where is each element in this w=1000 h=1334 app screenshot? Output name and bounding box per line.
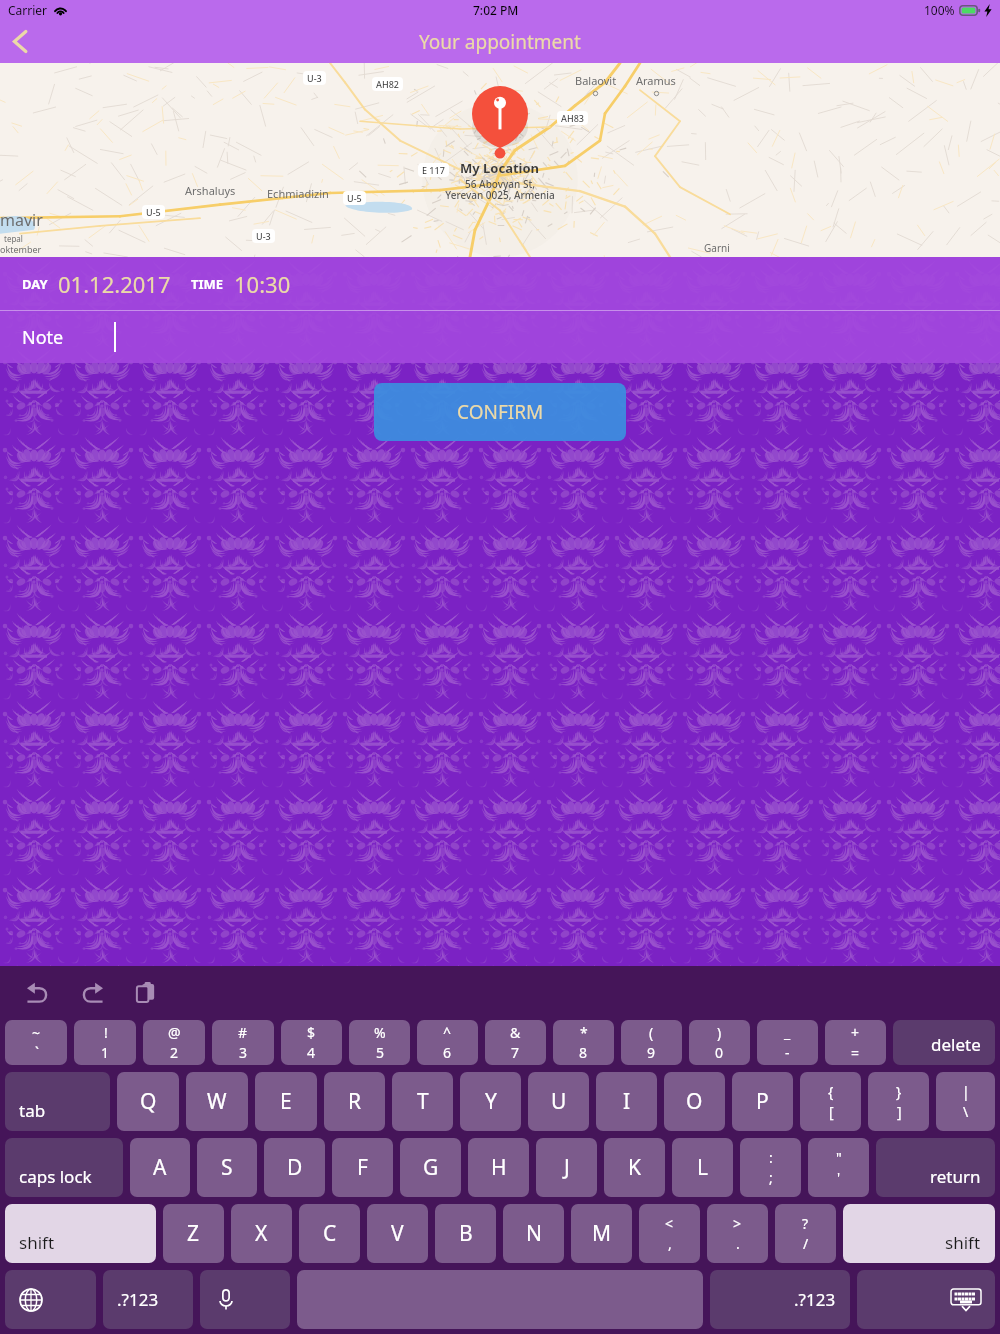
button[interactable]: DAY xyxy=(0,257,1000,310)
button[interactable]: .?123 xyxy=(103,1270,193,1329)
staticText: 100% xyxy=(924,2,955,18)
button[interactable]: J xyxy=(536,1138,597,1197)
button[interactable]: | xyxy=(936,1072,995,1131)
staticText: % xyxy=(374,1023,386,1042)
button[interactable]: Z xyxy=(163,1204,224,1263)
button[interactable]: Back xyxy=(0,20,40,63)
button[interactable]: Map, My Location, 56 Abovyan St, Yerevan… xyxy=(0,63,1000,257)
button[interactable]: shift xyxy=(843,1204,995,1263)
button[interactable]: A xyxy=(130,1138,190,1197)
button[interactable]: V xyxy=(367,1204,428,1263)
button[interactable]: T xyxy=(392,1072,453,1131)
staticText: < xyxy=(665,1214,674,1233)
button[interactable]: $ xyxy=(281,1020,342,1065)
button[interactable]: # xyxy=(212,1020,274,1065)
staticText: " xyxy=(836,1148,842,1167)
staticText: shift xyxy=(945,1231,981,1254)
button[interactable]: Y xyxy=(460,1072,521,1131)
staticText: ` xyxy=(35,1043,39,1062)
staticText: / xyxy=(803,1234,809,1253)
button[interactable]: I xyxy=(596,1072,657,1131)
button[interactable]: Hide keyboard xyxy=(857,1270,995,1329)
staticText: 3 xyxy=(239,1043,248,1062)
staticText: Balaovit xyxy=(575,73,617,88)
button[interactable]: .?123 xyxy=(710,1270,850,1329)
staticText: DAY xyxy=(22,275,48,293)
button[interactable]: { xyxy=(800,1072,861,1131)
button[interactable]: N xyxy=(503,1204,564,1263)
button[interactable]: O xyxy=(664,1072,725,1131)
button[interactable]: L xyxy=(672,1138,733,1197)
button[interactable]: } xyxy=(868,1072,929,1131)
button[interactable]: C xyxy=(299,1204,360,1263)
staticText: Aramus xyxy=(636,73,676,88)
button[interactable]: F xyxy=(332,1138,393,1197)
button[interactable]: E xyxy=(255,1072,317,1131)
button[interactable]: U xyxy=(528,1072,589,1131)
button[interactable]: W xyxy=(186,1072,248,1131)
button[interactable]: caps lock xyxy=(5,1138,123,1197)
staticText: tab xyxy=(19,1099,46,1122)
button[interactable]: G xyxy=(400,1138,461,1197)
staticText: U xyxy=(551,1087,567,1116)
staticText: J xyxy=(564,1153,570,1182)
staticText: U-5 xyxy=(347,192,362,204)
button[interactable]: ^ xyxy=(417,1020,478,1065)
button[interactable]: + xyxy=(825,1020,886,1065)
button[interactable]: % xyxy=(349,1020,410,1065)
button[interactable]: delete xyxy=(893,1020,995,1065)
button[interactable]: ~ xyxy=(5,1020,67,1065)
button[interactable]: Paste xyxy=(124,971,168,1015)
button[interactable]: < xyxy=(639,1204,700,1263)
button[interactable]: : xyxy=(740,1138,801,1197)
button[interactable]: CONFIRM xyxy=(374,383,626,441)
button[interactable]: > xyxy=(707,1204,768,1263)
button[interactable]: ( xyxy=(621,1020,682,1065)
button[interactable]: K xyxy=(604,1138,665,1197)
button[interactable]: shift xyxy=(5,1204,156,1263)
button[interactable]: D xyxy=(264,1138,325,1197)
button[interactable]: ? xyxy=(775,1204,836,1263)
staticText: TIME xyxy=(191,275,224,293)
button[interactable]: S xyxy=(197,1138,257,1197)
button[interactable]: @ xyxy=(143,1020,205,1065)
button[interactable]: M xyxy=(571,1204,632,1263)
staticText: Your appointment xyxy=(419,29,581,55)
staticText: E xyxy=(280,1087,292,1116)
staticText: U-5 xyxy=(146,206,161,218)
button[interactable]: Q xyxy=(117,1072,179,1131)
staticText: { xyxy=(828,1082,834,1101)
staticText: , xyxy=(668,1234,672,1253)
button[interactable]: ! xyxy=(74,1020,136,1065)
button[interactable]: ) xyxy=(689,1020,750,1065)
button[interactable]: tab xyxy=(5,1072,110,1131)
button[interactable]: Undo xyxy=(16,971,60,1015)
staticText: : xyxy=(769,1148,773,1167)
button[interactable]: R xyxy=(324,1072,385,1131)
staticText: CONFIRM xyxy=(457,399,544,425)
staticText: O xyxy=(686,1087,703,1116)
button[interactable]: P xyxy=(732,1072,793,1131)
staticText: S xyxy=(221,1153,233,1182)
button[interactable]: return xyxy=(876,1138,995,1197)
staticText: 2 xyxy=(170,1043,179,1062)
button[interactable]: Dictation xyxy=(200,1270,290,1329)
button[interactable]: H xyxy=(468,1138,529,1197)
staticText: .?123 xyxy=(794,1288,836,1311)
button[interactable]: Redo xyxy=(70,971,114,1015)
staticText: N xyxy=(526,1219,542,1248)
button[interactable]: Note xyxy=(0,311,1000,363)
staticText: ^ xyxy=(443,1023,452,1042)
staticText: B xyxy=(459,1219,473,1248)
button[interactable]: " xyxy=(808,1138,869,1197)
staticText: delete xyxy=(931,1033,981,1056)
button[interactable]: B xyxy=(435,1204,496,1263)
button[interactable]: Next keyboard xyxy=(5,1270,96,1329)
button[interactable]: * xyxy=(553,1020,614,1065)
button[interactable]: _ xyxy=(757,1020,818,1065)
button[interactable]: & xyxy=(485,1020,546,1065)
button[interactable]: X xyxy=(231,1204,292,1263)
staticText: ( xyxy=(649,1023,654,1042)
staticText: 7 xyxy=(511,1043,520,1062)
